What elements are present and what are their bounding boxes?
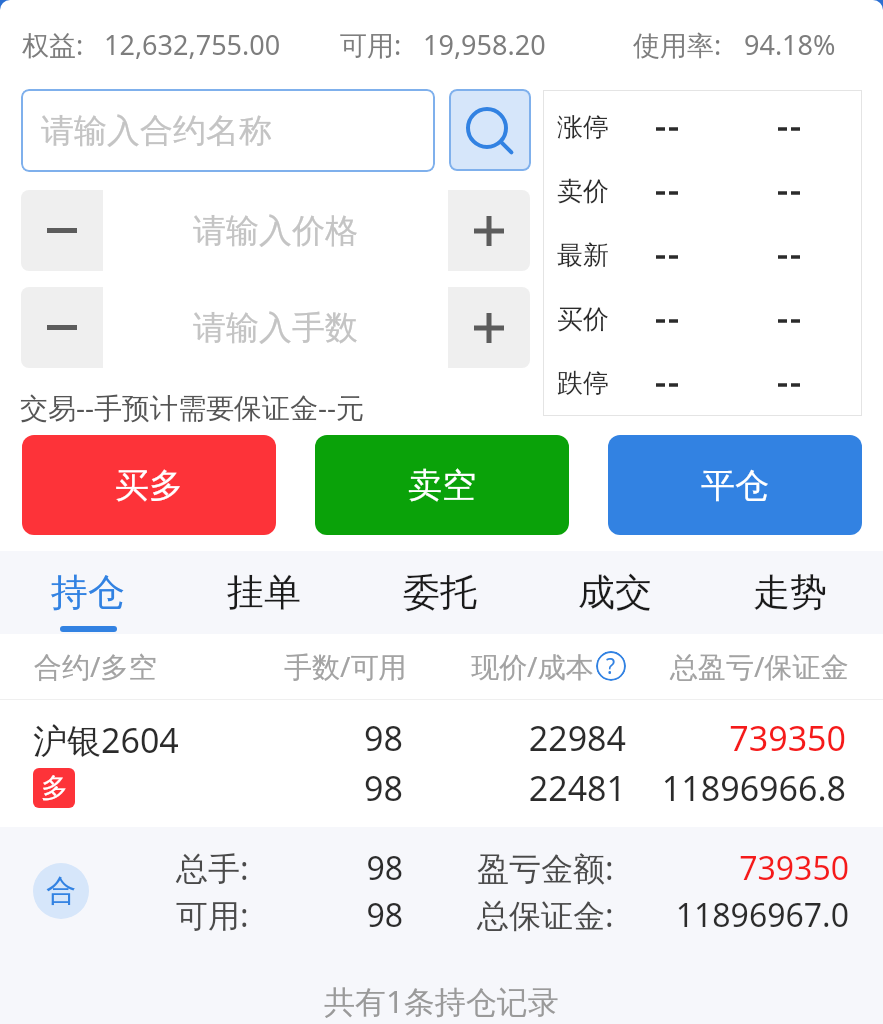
staticText: 买多 xyxy=(115,464,183,507)
staticText: 交易--手预计需要保证金--元 xyxy=(20,388,365,426)
button[interactable]: Decrease xyxy=(21,190,103,271)
staticText: 12,632,755.00 xyxy=(104,26,281,63)
staticText: 98 xyxy=(0,765,403,811)
button[interactable]: 成交 xyxy=(527,551,702,634)
staticText: 19,958.20 xyxy=(423,26,546,63)
button[interactable]: 平仓 xyxy=(608,435,862,535)
staticText: 盈亏金额: xyxy=(477,846,614,890)
staticText: 卖空 xyxy=(408,464,476,507)
staticText: 共有1条持仓记录 xyxy=(324,980,559,1022)
button[interactable]: 走势 xyxy=(702,551,877,634)
staticText: 持仓 xyxy=(51,569,125,616)
staticText: 平仓 xyxy=(701,464,769,507)
button[interactable]: Increase xyxy=(448,287,530,368)
staticText: 739350 xyxy=(0,715,846,761)
staticText: 挂单 xyxy=(227,569,301,616)
staticText: 现价/成本 xyxy=(471,647,594,685)
button[interactable]: Decrease xyxy=(21,287,103,368)
staticText: 94.18% xyxy=(744,26,836,63)
staticText: 多 xyxy=(41,771,68,805)
button[interactable]: 沪银2604 xyxy=(0,700,883,828)
button[interactable]: Search xyxy=(449,89,531,171)
button[interactable]: 持仓 xyxy=(0,551,176,634)
staticText: 沪银2604 xyxy=(33,717,179,763)
staticText: 739350 xyxy=(0,846,849,890)
staticText: 可用: xyxy=(176,893,249,937)
staticText: 总盈亏/保证金 xyxy=(670,647,849,685)
button[interactable]: 请输入价格 xyxy=(103,190,448,271)
staticText: 合 xyxy=(46,872,76,910)
staticText: 请输入价格 xyxy=(193,210,358,252)
staticText: 请输入手数 xyxy=(193,307,358,349)
button[interactable]: Increase xyxy=(448,190,530,271)
staticText: 手数/可用 xyxy=(284,647,407,685)
staticText: 11896966.8 xyxy=(0,765,846,811)
staticText: 可用: xyxy=(340,26,402,63)
button[interactable]: 卖空 xyxy=(315,435,569,535)
staticText: 22984 xyxy=(0,715,626,761)
staticText: 98 xyxy=(0,715,403,761)
staticText: 委托 xyxy=(403,569,477,616)
staticText: 最新 xyxy=(557,239,609,272)
staticText: 请输入合约名称 xyxy=(41,110,272,152)
staticText: 11896967.0 xyxy=(0,893,849,937)
staticText: 权益: xyxy=(22,26,84,63)
staticText: 22481 xyxy=(0,765,626,811)
staticText: 98 xyxy=(0,846,403,890)
staticText: 合约/多空 xyxy=(34,647,157,685)
button[interactable]: 请输入手数 xyxy=(103,287,448,368)
staticText: 98 xyxy=(0,893,403,937)
staticText: 总手: xyxy=(176,846,249,890)
staticText: 使用率: xyxy=(633,26,722,63)
staticText: 买价 xyxy=(557,303,609,336)
staticText: 涨停 xyxy=(557,111,609,144)
staticText: ? xyxy=(606,652,616,681)
staticText: 走势 xyxy=(753,569,827,616)
button[interactable]: 买多 xyxy=(22,435,276,535)
staticText: 跌停 xyxy=(557,367,609,400)
button[interactable]: 委托 xyxy=(352,551,527,634)
staticText: 卖价 xyxy=(557,175,609,208)
staticText: 总保证金: xyxy=(477,893,614,937)
staticText: 成交 xyxy=(578,569,652,616)
button[interactable]: 请输入合约名称 xyxy=(21,89,435,172)
button[interactable]: 挂单 xyxy=(176,551,352,634)
